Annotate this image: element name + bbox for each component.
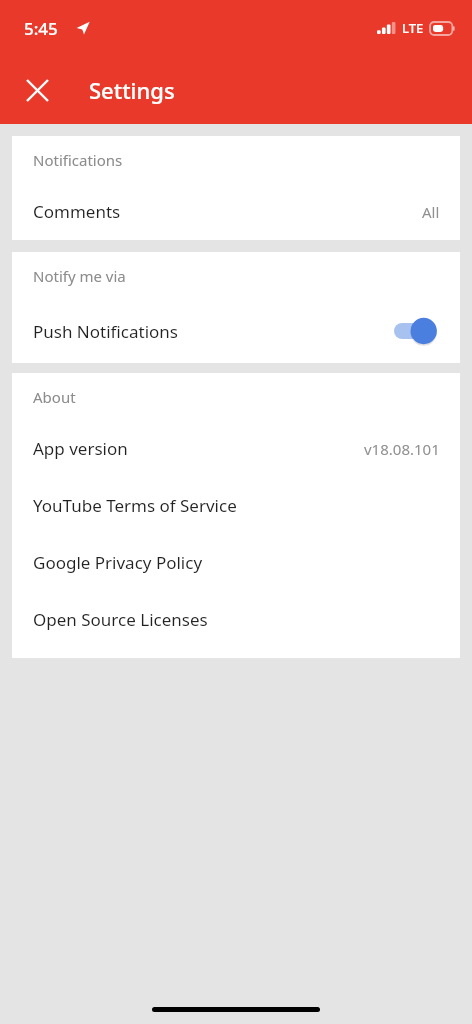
staticText: Notify me via [33,266,126,286]
button[interactable]: App version [12,420,460,477]
staticText: All [422,202,440,222]
staticText: LTE [402,19,424,37]
staticText: v18.08.101 [364,439,440,459]
staticText: 5:45 [24,17,58,40]
staticText: Google Privacy Policy [33,551,203,574]
staticText: Notifications [33,150,123,170]
staticText: YouTube Terms of Service [33,494,237,517]
staticText: Open Source Licenses [33,608,208,631]
button[interactable]: YouTube Terms of Service [12,477,460,534]
button[interactable]: Open Source Licenses [12,591,460,648]
button[interactable]: Push Notifications [12,299,460,363]
button[interactable]: Comments [12,183,460,240]
button[interactable]: Google Privacy Policy [12,534,460,591]
staticText: Push Notifications [33,320,178,343]
staticText: About [33,387,76,407]
button[interactable]: Close [14,67,60,113]
staticText: Comments [33,200,121,223]
staticText: Settings [89,75,175,105]
staticText: App version [33,437,128,460]
